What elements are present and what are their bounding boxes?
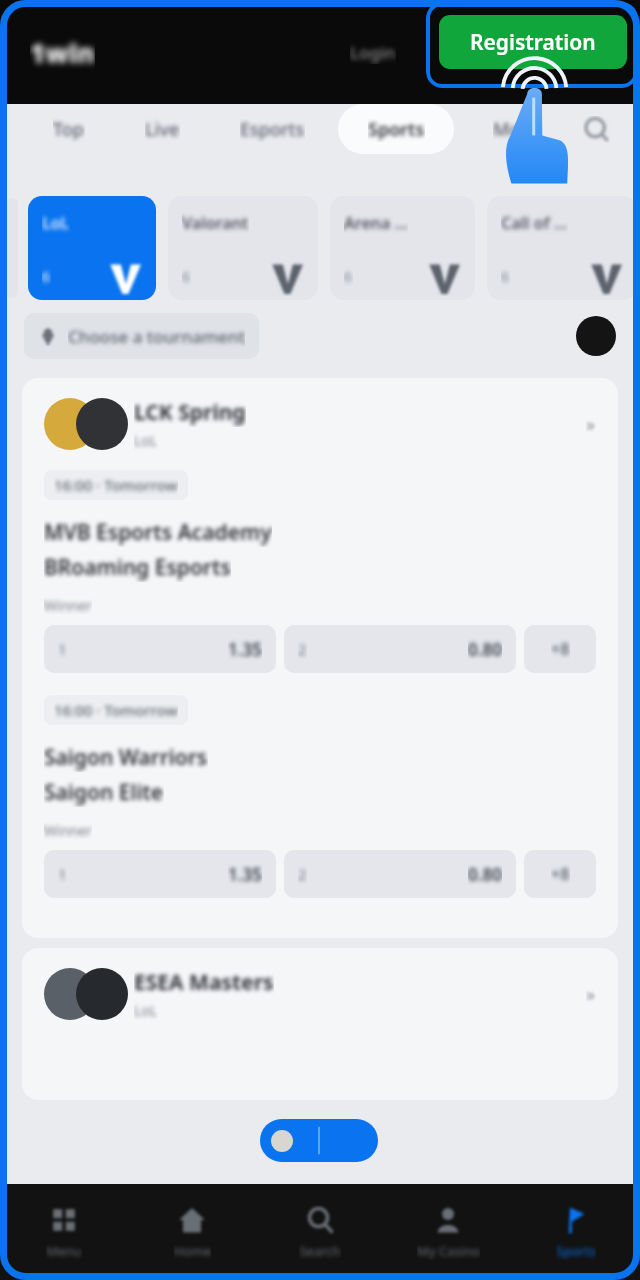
staticText: Menu xyxy=(46,1242,82,1260)
button[interactable]: Esports xyxy=(212,104,332,154)
staticText: LoL xyxy=(134,431,158,450)
staticText: LoL xyxy=(134,1001,158,1020)
button[interactable]: Search xyxy=(256,1184,384,1280)
staticText: 1 xyxy=(58,864,67,884)
button[interactable]: LoL xyxy=(28,196,156,300)
staticText: 2 xyxy=(298,639,307,659)
button[interactable]: Betslip xyxy=(260,1119,378,1162)
staticText: Sports xyxy=(368,117,425,142)
staticText: BRoaming Esports xyxy=(44,553,231,582)
button[interactable]: Live xyxy=(118,104,206,154)
button[interactable]: Login xyxy=(350,41,396,64)
button[interactable]: +8 xyxy=(524,850,596,898)
staticText: Esports xyxy=(240,117,305,142)
staticText: 16:00 · Tomorrow xyxy=(54,700,178,720)
staticText: Live xyxy=(145,117,180,142)
staticText: LCK Spring xyxy=(134,398,246,427)
staticText: +8 xyxy=(551,863,570,885)
staticText: 6 xyxy=(182,267,191,286)
staticText: +8 xyxy=(551,638,570,660)
staticText: Sports xyxy=(556,1242,596,1260)
button[interactable]: Filter xyxy=(576,316,616,356)
staticText: Search xyxy=(299,1242,341,1260)
button[interactable]: Arena ... xyxy=(330,196,475,300)
staticText: 1win xyxy=(30,35,95,70)
button[interactable]: More xyxy=(460,104,571,154)
staticText: More xyxy=(493,117,539,142)
button[interactable]: Menu xyxy=(0,1184,128,1280)
staticText: 1 xyxy=(58,639,67,659)
staticText: 2 xyxy=(298,864,307,884)
staticText: Saigon Elite xyxy=(44,778,164,807)
staticText: Saigon Warriors xyxy=(44,743,208,772)
staticText: 6 xyxy=(501,267,510,286)
other: Tap here xyxy=(495,60,581,190)
button[interactable]: +8 xyxy=(524,625,596,673)
button[interactable]: Sports xyxy=(512,1184,640,1280)
button[interactable]: Choose a tournament xyxy=(24,313,259,359)
button[interactable]: 2 xyxy=(284,850,516,898)
staticText: Winner xyxy=(44,596,92,615)
staticText: 6 xyxy=(344,267,353,286)
staticText: » xyxy=(586,412,596,437)
staticText: Home xyxy=(174,1242,211,1260)
staticText: Winner xyxy=(44,821,92,840)
button[interactable]: Search xyxy=(574,107,618,151)
staticText: 0.80 xyxy=(468,863,502,886)
button[interactable]: 16:00 · Tomorrow xyxy=(22,695,618,920)
staticText: 6 xyxy=(42,267,51,286)
staticText: Login xyxy=(350,41,396,64)
staticText: LoL xyxy=(42,212,70,234)
staticText: My Casino xyxy=(417,1242,480,1260)
button[interactable]: 16:00 · Tomorrow xyxy=(22,470,618,695)
staticText: Arena ... xyxy=(344,212,408,234)
button[interactable]: 1 xyxy=(44,625,276,673)
button[interactable]: Home xyxy=(128,1184,256,1280)
staticText: MVB Esports Academy xyxy=(44,518,272,547)
staticText: Call of ... xyxy=(501,212,568,234)
staticText: Choose a tournament xyxy=(68,325,245,348)
staticText: » xyxy=(586,982,596,1007)
button[interactable]: Call of ... xyxy=(487,196,637,300)
button[interactable]: LCK Spring xyxy=(22,378,618,470)
staticText: Top xyxy=(53,117,85,142)
staticText: 1.35 xyxy=(228,638,262,661)
staticText: 16:00 · Tomorrow xyxy=(54,475,178,495)
button[interactable]: My Casino xyxy=(384,1184,512,1280)
staticText: Registration xyxy=(470,28,596,57)
staticText: 0.80 xyxy=(468,638,502,661)
staticText: 1.35 xyxy=(228,863,262,886)
button[interactable]: Valorant xyxy=(168,196,318,300)
button[interactable]: ESEA Masters xyxy=(22,948,618,1040)
button[interactable]: 1 xyxy=(44,850,276,898)
button[interactable]: 2 xyxy=(284,625,516,673)
staticText: ESEA Masters xyxy=(134,968,274,997)
button[interactable]: Top xyxy=(25,104,112,154)
button[interactable]: Sports xyxy=(338,104,454,154)
staticText: Valorant xyxy=(182,212,249,234)
button[interactable]: Registration xyxy=(439,15,627,69)
